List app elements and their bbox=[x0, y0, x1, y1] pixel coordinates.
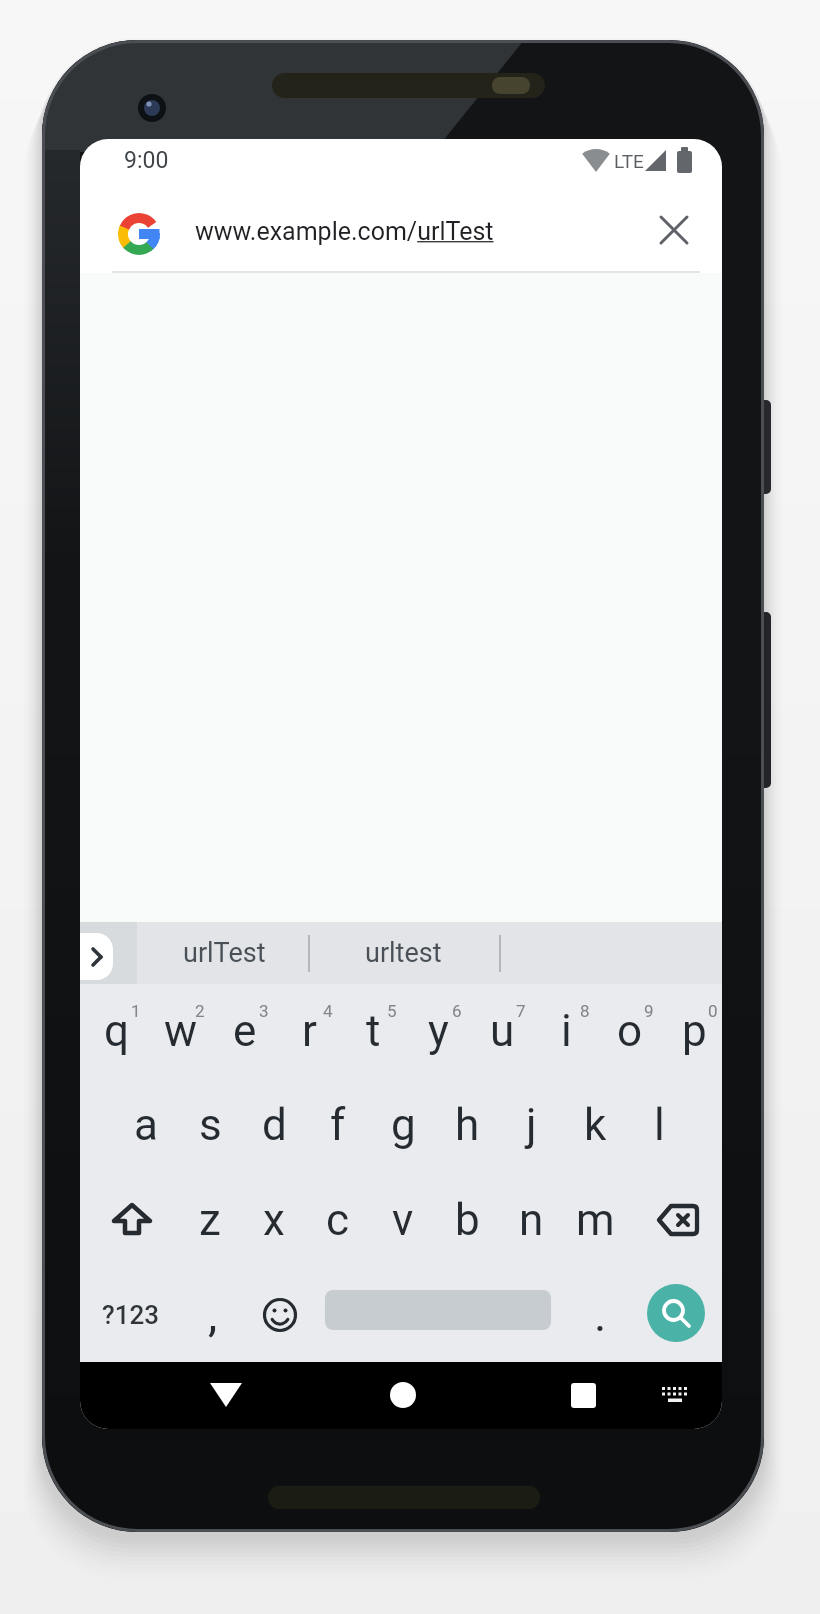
button[interactable]: , bbox=[181, 1267, 245, 1362]
staticText: 7 bbox=[516, 1001, 526, 1021]
button[interactable]: r bbox=[277, 984, 341, 1078]
button[interactable]: y bbox=[406, 984, 470, 1078]
staticText: urlTest bbox=[183, 937, 266, 969]
button[interactable]: h bbox=[435, 1078, 499, 1172]
staticText: a bbox=[134, 1099, 158, 1151]
button[interactable] bbox=[654, 210, 694, 250]
button[interactable]: e bbox=[213, 984, 277, 1078]
button[interactable]: www.example.com/urlTest bbox=[195, 217, 494, 246]
staticText: 9 bbox=[644, 1001, 654, 1021]
button[interactable]: d bbox=[242, 1078, 306, 1172]
button[interactable] bbox=[386, 1378, 420, 1412]
button[interactable] bbox=[647, 1284, 705, 1342]
staticText: h bbox=[455, 1099, 480, 1151]
button[interactable] bbox=[638, 1173, 718, 1267]
staticText: 4 bbox=[323, 1001, 333, 1021]
button[interactable]: w bbox=[149, 984, 213, 1078]
button[interactable]: p bbox=[662, 984, 722, 1078]
staticText: n bbox=[519, 1194, 544, 1246]
button[interactable]: l bbox=[627, 1078, 691, 1172]
staticText: g bbox=[391, 1099, 416, 1151]
button[interactable] bbox=[248, 1267, 312, 1362]
staticText: k bbox=[584, 1099, 607, 1151]
staticText: 6 bbox=[452, 1001, 462, 1021]
staticText: d bbox=[262, 1099, 287, 1151]
button[interactable]: s bbox=[178, 1078, 242, 1172]
button[interactable]: x bbox=[242, 1173, 306, 1267]
button[interactable] bbox=[655, 1380, 695, 1410]
button[interactable] bbox=[566, 1378, 600, 1412]
button[interactable] bbox=[80, 933, 113, 980]
staticText: 3 bbox=[259, 1001, 269, 1021]
staticText: 0 bbox=[708, 1001, 718, 1021]
staticText: j bbox=[526, 1099, 537, 1151]
staticText: r bbox=[302, 1005, 317, 1057]
staticText: urltest bbox=[365, 937, 442, 969]
button[interactable]: j bbox=[499, 1078, 563, 1172]
button[interactable]: z bbox=[178, 1173, 242, 1267]
button[interactable]: i bbox=[534, 984, 598, 1078]
staticText: 1 bbox=[131, 1001, 141, 1021]
staticText: u bbox=[490, 1005, 515, 1057]
staticText: . bbox=[594, 1287, 607, 1342]
staticText: m bbox=[576, 1194, 615, 1246]
button[interactable]: u bbox=[470, 984, 534, 1078]
button[interactable]: . bbox=[568, 1267, 632, 1362]
button[interactable]: ?123 bbox=[90, 1267, 170, 1362]
staticText: LTE bbox=[614, 150, 644, 172]
button[interactable] bbox=[209, 1378, 243, 1412]
staticText: x bbox=[263, 1194, 285, 1246]
staticText: 2 bbox=[195, 1001, 205, 1021]
button[interactable]: m bbox=[563, 1173, 627, 1267]
staticText: p bbox=[682, 1005, 707, 1057]
button[interactable] bbox=[92, 1173, 172, 1267]
staticText: l bbox=[654, 1099, 665, 1151]
button[interactable]: v bbox=[371, 1173, 435, 1267]
button[interactable]: f bbox=[306, 1078, 370, 1172]
staticText: s bbox=[199, 1099, 222, 1151]
staticText: 8 bbox=[580, 1001, 590, 1021]
button[interactable]: o bbox=[598, 984, 662, 1078]
staticText: i bbox=[561, 1005, 572, 1057]
staticText: o bbox=[617, 1005, 643, 1057]
staticText: c bbox=[326, 1194, 350, 1246]
button[interactable]: urlTest bbox=[157, 922, 291, 984]
staticText: t bbox=[366, 1005, 381, 1057]
button[interactable]: a bbox=[114, 1078, 178, 1172]
button[interactable]: n bbox=[499, 1173, 563, 1267]
button[interactable]: g bbox=[371, 1078, 435, 1172]
button[interactable]: q bbox=[85, 984, 149, 1078]
button[interactable]: t bbox=[341, 984, 405, 1078]
staticText: 9:00 bbox=[124, 147, 169, 174]
staticText: b bbox=[455, 1194, 480, 1246]
button[interactable]: c bbox=[306, 1173, 370, 1267]
staticText: y bbox=[428, 1005, 449, 1057]
staticText: w bbox=[164, 1005, 198, 1057]
staticText: q bbox=[104, 1005, 130, 1057]
staticText: ?123 bbox=[102, 1300, 159, 1330]
staticText: f bbox=[330, 1099, 346, 1151]
staticText: v bbox=[392, 1194, 414, 1246]
staticText: 5 bbox=[387, 1001, 397, 1021]
staticText: z bbox=[199, 1194, 221, 1246]
staticText: e bbox=[233, 1005, 257, 1057]
button[interactable]: b bbox=[435, 1173, 499, 1267]
button[interactable]: k bbox=[563, 1078, 627, 1172]
staticText: , bbox=[208, 1287, 218, 1342]
button[interactable]: urltest bbox=[336, 922, 470, 984]
